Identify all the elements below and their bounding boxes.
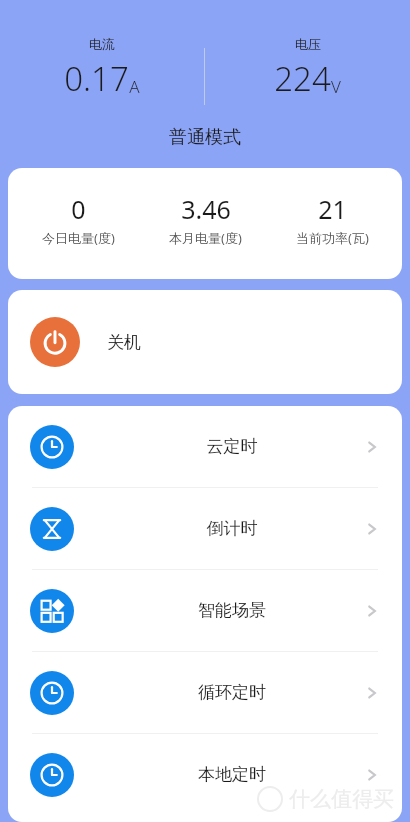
staticText: 224 <box>274 56 331 101</box>
staticText: 关机 <box>107 332 141 353</box>
staticText: A <box>129 75 140 98</box>
staticText: 本月电量(度) <box>169 229 242 247</box>
button[interactable]: 倒计时 <box>8 488 402 569</box>
button[interactable]: 云定时 <box>8 406 402 487</box>
button[interactable]: 关机 <box>8 290 402 394</box>
staticText: V <box>331 75 341 98</box>
staticText: 电压 <box>295 36 321 52</box>
staticText: 21 <box>318 192 347 226</box>
staticText: 今日电量(度) <box>42 229 115 247</box>
staticText: 3.46 <box>181 192 231 226</box>
staticText: 智能场景 <box>100 600 364 621</box>
staticText: 倒计时 <box>100 518 364 539</box>
staticText: 电流 <box>89 36 115 52</box>
staticText: 0 <box>71 192 86 226</box>
staticText: 0.17 <box>64 56 129 101</box>
staticText: 循环定时 <box>100 682 364 703</box>
button[interactable]: 循环定时 <box>8 652 402 733</box>
staticText: 本地定时 <box>100 764 364 785</box>
staticText: 普通模式 <box>169 126 241 149</box>
staticText: 云定时 <box>100 436 364 457</box>
staticText: 什么值得买 <box>289 786 394 812</box>
button[interactable]: 本地定时 <box>8 734 402 815</box>
staticText: 当前功率(瓦) <box>296 229 369 247</box>
button[interactable]: 智能场景 <box>8 570 402 651</box>
